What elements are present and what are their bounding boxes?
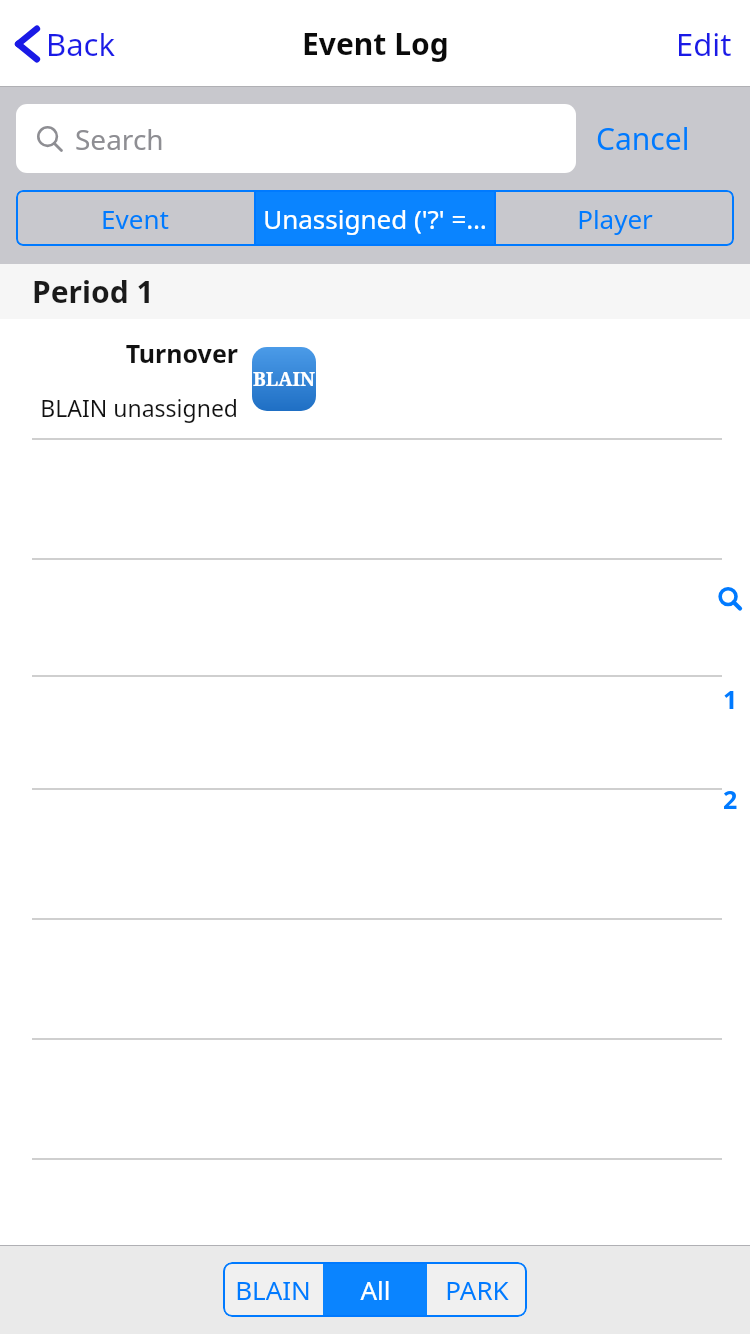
button[interactable]: Unassigned ('?' =… xyxy=(256,190,494,246)
staticText: Event xyxy=(101,201,169,236)
button[interactable]: Search xyxy=(16,104,576,173)
staticText: Unassigned ('?' =… xyxy=(263,201,487,236)
button[interactable]: 2 xyxy=(710,781,750,817)
staticText: Cancel xyxy=(596,118,690,159)
other: Section index xyxy=(710,581,750,817)
staticText: 2 xyxy=(723,782,738,816)
staticText: Player xyxy=(577,201,653,236)
button[interactable]: PARK xyxy=(427,1262,527,1317)
button[interactable]: Turnover xyxy=(0,319,750,439)
button[interactable]: Edit xyxy=(658,15,750,73)
staticText: Event Log xyxy=(302,23,449,64)
staticText: Turnover xyxy=(125,336,238,370)
button[interactable]: BLAIN xyxy=(223,1262,323,1317)
staticText: Search xyxy=(75,120,164,158)
button[interactable]: All xyxy=(323,1262,427,1317)
staticText: BLAIN xyxy=(253,366,316,392)
staticText: Edit xyxy=(676,23,732,65)
button[interactable]: Player xyxy=(496,190,734,246)
button[interactable]: 1 xyxy=(710,681,750,717)
button[interactable]: Event xyxy=(16,190,254,246)
button[interactable]: Search sections xyxy=(710,581,750,617)
staticText: BLAIN unassigned xyxy=(40,392,238,423)
button[interactable]: Back xyxy=(14,23,115,65)
button[interactable]: Cancel xyxy=(576,108,710,169)
staticText: 1 xyxy=(723,682,738,716)
staticText: BLAIN xyxy=(235,1272,311,1307)
staticText: All xyxy=(360,1272,391,1307)
staticText: Back xyxy=(46,23,115,65)
staticText: PARK xyxy=(445,1272,509,1307)
staticText: Period 1 xyxy=(32,271,154,312)
